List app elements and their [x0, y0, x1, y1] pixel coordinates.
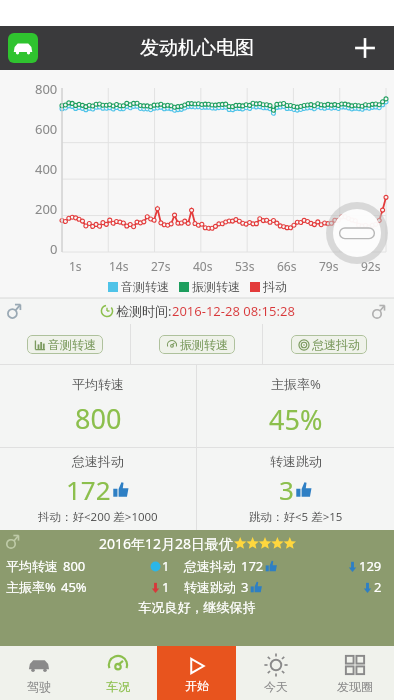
button[interactable]: 今天	[236, 646, 315, 700]
button[interactable]: 怠速抖动	[0, 448, 196, 530]
staticText: 振测转速	[192, 279, 240, 294]
button[interactable]: 开始	[157, 646, 236, 700]
staticText: 172	[66, 472, 111, 507]
staticText: 平均转速	[72, 376, 124, 392]
staticText: 1	[162, 557, 170, 575]
staticText: 400	[35, 160, 58, 178]
staticText: 怠速抖动	[184, 558, 236, 574]
staticText: 45%	[269, 401, 323, 438]
button[interactable]: 驾驶	[0, 646, 78, 700]
staticText: 驾驶	[27, 679, 51, 694]
staticText: 600	[35, 120, 58, 138]
staticText: 2	[374, 578, 382, 596]
staticText: 14s	[109, 258, 129, 274]
button[interactable]: 车况	[78, 646, 157, 700]
staticText: 发现圈	[337, 679, 373, 694]
button[interactable]: 发现圈	[315, 646, 394, 700]
staticText: 检测时间:	[116, 302, 172, 320]
button[interactable]: 平均转速	[0, 365, 196, 447]
staticText: 92s	[361, 258, 381, 274]
staticText: 车况	[106, 679, 130, 694]
button[interactable]: 主振率%	[197, 365, 394, 447]
button[interactable]: App icon	[8, 33, 38, 63]
staticText: 800	[75, 400, 122, 437]
staticText: 车况良好，继续保持	[0, 599, 394, 615]
button[interactable]: 转速跳动	[197, 448, 394, 530]
staticText: 转速跳动	[184, 579, 236, 595]
button[interactable]: 振测转速	[131, 324, 262, 364]
staticText: 转速跳动	[270, 453, 322, 469]
staticText: 3	[279, 472, 294, 507]
staticText: 发动机心电图	[140, 36, 254, 60]
button[interactable]: 怠速抖动	[263, 324, 394, 364]
staticText: 200	[35, 200, 58, 218]
staticText: 3	[241, 578, 249, 596]
staticText: 2016年12月28日最优	[99, 534, 234, 553]
staticText: 跳动：好<5 差>15	[249, 509, 343, 525]
staticText: 开始	[185, 678, 209, 693]
button[interactable]: 音测转速	[0, 324, 130, 364]
staticText: 音测转速	[121, 279, 169, 294]
staticText: 今天	[264, 679, 288, 694]
staticText: 53s	[235, 258, 255, 274]
staticText: 1s	[69, 258, 82, 274]
staticText: 抖动：好<200 差>1000	[38, 509, 158, 525]
staticText: 79s	[319, 258, 339, 274]
staticText: 0	[50, 240, 58, 258]
staticText: 怠速抖动	[72, 453, 124, 469]
staticText: 800	[63, 557, 86, 575]
staticText: 音测转速	[48, 337, 96, 352]
staticText: 主振率%	[271, 375, 321, 393]
staticText: 振测转速	[180, 337, 228, 352]
staticText: 172	[241, 557, 264, 575]
button[interactable]: Add	[350, 33, 380, 63]
staticText: 45%	[61, 578, 87, 596]
staticText: 主振率%	[6, 578, 56, 596]
staticText: 66s	[277, 258, 297, 274]
staticText: 抖动	[263, 279, 287, 294]
staticText: 1	[162, 578, 170, 596]
staticText: 怠速抖动	[312, 337, 360, 352]
staticText: 40s	[193, 258, 213, 274]
staticText: 平均转速	[6, 558, 58, 574]
staticText: 27s	[151, 258, 171, 274]
staticText: 129	[359, 557, 382, 575]
staticText: 2016-12-28 08:15:28	[172, 302, 295, 320]
staticText: 800	[35, 80, 58, 98]
